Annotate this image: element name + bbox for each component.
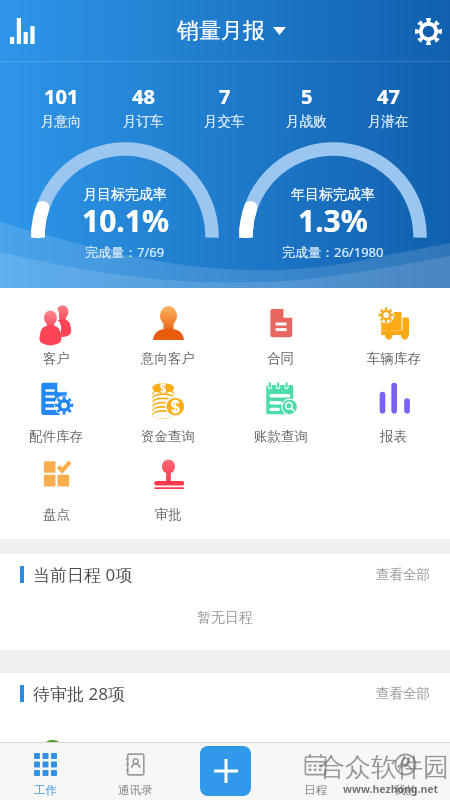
button[interactable]: Add — [200, 746, 251, 796]
staticText: 通讯录 — [118, 783, 153, 797]
button[interactable]: 待审批 28项 — [0, 673, 450, 713]
staticText: 完成量：26/1980 — [282, 243, 384, 261]
staticText: 车辆库存 — [367, 350, 421, 367]
staticText: 盘点 — [43, 506, 70, 523]
button[interactable]: 日程 — [270, 742, 360, 800]
staticText: 合同 — [267, 350, 294, 367]
staticText: 5 — [301, 83, 313, 110]
staticText: 当前日程 0项 — [33, 563, 133, 586]
button[interactable]: 审批 — [112, 459, 224, 537]
staticText: 10.1% — [82, 200, 169, 241]
staticText: 完成量：7/69 — [85, 243, 165, 261]
staticText: 月潜在 — [368, 113, 409, 130]
button[interactable]: 当前日程 0项 — [0, 554, 450, 594]
staticText: 年目标完成率 — [291, 186, 375, 204]
button[interactable]: 合同 — [224, 303, 337, 381]
staticText: 月订车 — [123, 113, 164, 130]
staticText: 47 — [377, 83, 400, 110]
staticText: 101 — [44, 83, 79, 110]
staticText: 审批 — [155, 506, 182, 523]
button[interactable]: 通讯录 — [90, 742, 180, 800]
button[interactable]: Settings — [406, 5, 450, 57]
staticText: 工作 — [34, 783, 57, 797]
button[interactable]: 配件库存 — [0, 381, 112, 459]
staticText: 资金查询 — [141, 428, 195, 445]
button[interactable]: 意向客户 — [112, 303, 224, 381]
staticText: 月意向 — [41, 113, 82, 130]
staticText: 暂无日程 — [197, 609, 253, 627]
button[interactable]: 销量月报 — [171, 11, 292, 51]
button[interactable]: 盘点 — [0, 459, 112, 537]
button[interactable]: 工作 — [0, 742, 90, 800]
button[interactable]: 报表 — [337, 381, 450, 459]
button[interactable]: 账款查询 — [224, 381, 337, 459]
staticText: 配件库存 — [29, 428, 83, 445]
staticText: 日程 — [304, 783, 327, 797]
staticText: 1.3% — [298, 200, 368, 241]
button[interactable] — [0, 713, 450, 800]
staticText: 月目标完成率 — [83, 186, 167, 204]
staticText: 客户 — [43, 350, 70, 367]
staticText: 月交车 — [204, 113, 245, 130]
staticText: 48 — [132, 83, 155, 110]
staticText: 我的 — [394, 783, 417, 797]
staticText: 7 — [219, 83, 231, 110]
staticText: 合众软件园 — [319, 751, 449, 784]
staticText: 月战败 — [286, 113, 327, 130]
staticText: 报表 — [380, 428, 407, 445]
button[interactable]: 客户 — [0, 303, 112, 381]
staticText: 查看全部 — [376, 566, 430, 583]
button[interactable]: 车辆库存 — [337, 303, 450, 381]
staticText: 账款查询 — [254, 428, 308, 445]
staticText: 查看全部 — [376, 685, 430, 702]
staticText: www.hezhong.net — [343, 782, 439, 796]
staticText: 待审批 28项 — [33, 682, 125, 705]
staticText: 销量月报 — [177, 17, 265, 45]
staticText: 意向客户 — [141, 350, 195, 367]
button[interactable]: 我的 — [360, 742, 450, 800]
button[interactable]: Statistics — [0, 5, 44, 57]
button[interactable]: 资金查询 — [112, 381, 224, 459]
